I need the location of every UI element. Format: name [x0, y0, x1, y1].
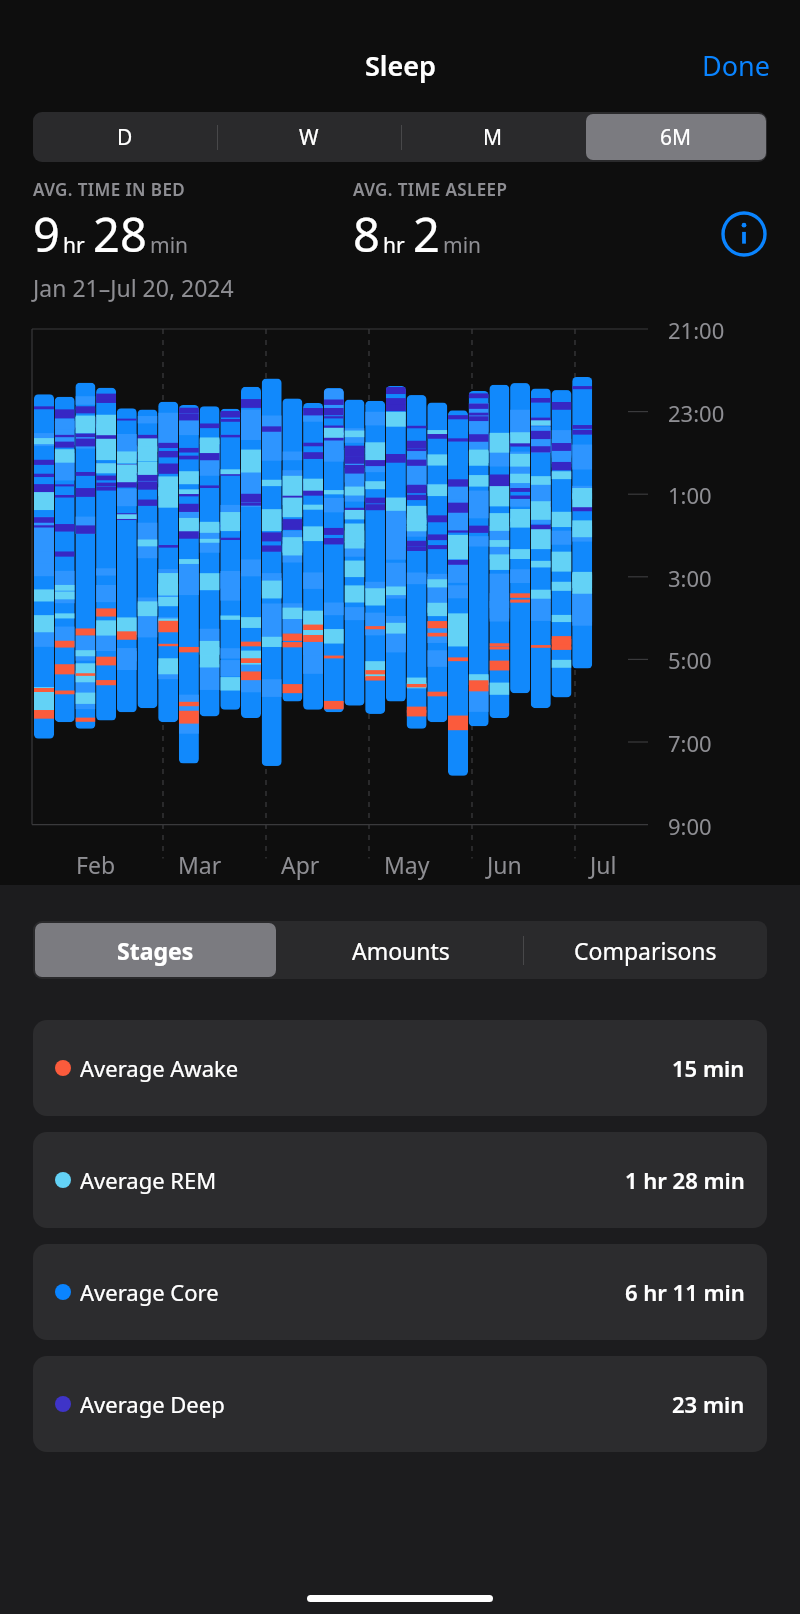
staticText: Apr: [281, 849, 320, 880]
staticText: 3:00: [668, 563, 712, 593]
staticText: D: [117, 123, 133, 152]
staticText: Mar: [178, 849, 222, 880]
staticText: min: [150, 231, 189, 260]
staticText: 6 hr 11 min: [625, 1277, 745, 1307]
button[interactable]: Average Core: [33, 1244, 767, 1340]
staticText: hr: [383, 231, 405, 260]
button[interactable]: M: [401, 112, 585, 162]
button[interactable]: Amounts: [278, 921, 523, 979]
staticText: 9: [33, 202, 60, 266]
button[interactable]: Average REM: [33, 1132, 767, 1228]
staticText: W: [299, 123, 319, 152]
staticText: 7:00: [668, 728, 712, 758]
staticText: AVG. TIME IN BED: [33, 178, 186, 201]
button[interactable]: D: [33, 112, 217, 162]
staticText: 21:00: [668, 315, 725, 345]
staticText: 23 min: [672, 1389, 745, 1419]
staticText: 1:00: [668, 480, 712, 510]
staticText: 5:00: [668, 645, 712, 675]
staticText: Amounts: [352, 935, 450, 966]
button[interactable]: Average Deep: [33, 1356, 767, 1452]
staticText: Average Awake: [80, 1053, 239, 1083]
button[interactable]: W: [217, 112, 401, 162]
staticText: 28: [93, 202, 147, 266]
staticText: Sleep: [365, 47, 436, 84]
staticText: Comparisons: [574, 935, 717, 966]
staticText: M: [483, 123, 503, 152]
staticText: Jan 21–Jul 20, 2024: [33, 272, 234, 303]
staticText: Stages: [117, 935, 194, 966]
staticText: hr: [63, 231, 85, 260]
staticText: Jul: [590, 849, 617, 880]
staticText: May: [384, 849, 430, 880]
staticText: 8: [353, 202, 380, 266]
button[interactable]: Done: [690, 41, 782, 90]
staticText: 1 hr 28 min: [625, 1165, 745, 1195]
staticText: AVG. TIME ASLEEP: [353, 178, 508, 201]
staticText: 23:00: [668, 398, 725, 428]
staticText: Average Deep: [80, 1389, 225, 1419]
staticText: 2: [413, 202, 440, 266]
staticText: 15 min: [672, 1053, 745, 1083]
staticText: Average Core: [80, 1277, 219, 1307]
button[interactable]: Stages: [33, 921, 278, 979]
staticText: 6M: [660, 123, 692, 152]
staticText: Average REM: [80, 1165, 217, 1195]
staticText: Feb: [76, 849, 116, 880]
staticText: 9:00: [668, 811, 712, 841]
staticText: Done: [702, 47, 770, 84]
staticText: min: [443, 231, 482, 260]
button[interactable]: 6M: [585, 112, 767, 162]
button[interactable]: About sleep data: [721, 211, 767, 257]
button[interactable]: Comparisons: [523, 921, 767, 979]
staticText: Jun: [487, 849, 522, 880]
button[interactable]: Average Awake: [33, 1020, 767, 1116]
